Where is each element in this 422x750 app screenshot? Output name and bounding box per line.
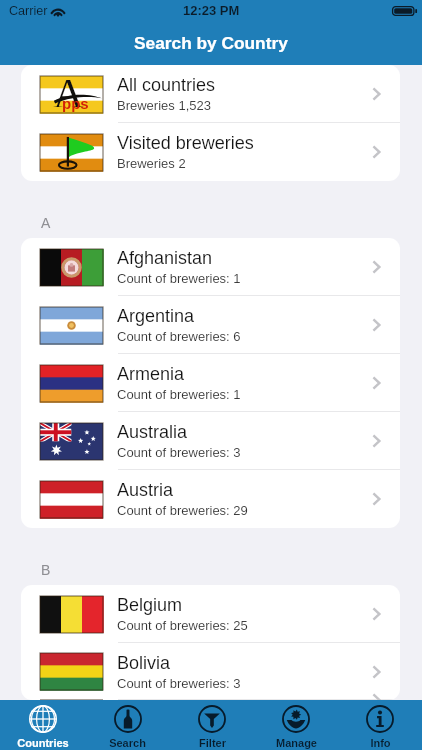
button[interactable]: Countries: [0, 700, 85, 750]
staticText: A: [41, 215, 51, 231]
staticText: Count of breweries: 25: [117, 618, 248, 633]
staticText: Armenia: [117, 364, 185, 384]
staticText: Argentina: [117, 306, 195, 326]
staticText: Carrier: [9, 4, 48, 18]
staticText: A: [53, 70, 85, 107]
staticText: B: [41, 562, 51, 578]
staticText: Filter: [199, 737, 226, 749]
staticText: 12:23 PM: [183, 3, 240, 18]
button[interactable]: Filter: [170, 700, 254, 750]
staticText: Austria: [117, 480, 174, 500]
button[interactable]: Armenia: [21, 354, 400, 412]
button[interactable]: Australia: [21, 412, 400, 470]
staticText: Countries: [17, 737, 69, 749]
staticText: Count of breweries: 3: [117, 445, 241, 460]
button[interactable]: Afghanistan: [21, 238, 400, 296]
button[interactable]: Visited breweries: [21, 123, 400, 181]
staticText: Count of breweries: 1: [117, 387, 241, 402]
staticText: Count of breweries: 1: [117, 271, 241, 286]
staticText: Count of breweries: 29: [117, 503, 248, 518]
staticText: Breweries 2: [117, 156, 186, 171]
staticText: Manage: [276, 737, 317, 749]
staticText: pps: [62, 95, 89, 112]
button[interactable]: A: [21, 65, 400, 123]
button[interactable]: Belgium: [21, 585, 400, 643]
staticText: Bolivia: [117, 653, 171, 673]
button[interactable]: Search: [85, 700, 170, 750]
staticText: Search by Country: [134, 33, 288, 52]
staticText: Count of breweries: 6: [117, 329, 241, 344]
staticText: Search: [109, 737, 146, 749]
button[interactable]: Argentina: [21, 296, 400, 354]
staticText: Breweries 1,523: [117, 98, 211, 113]
staticText: Count of breweries: 3: [117, 676, 241, 691]
staticText: All countries: [117, 75, 216, 95]
staticText: Belgium: [117, 595, 183, 615]
staticText: Afghanistan: [117, 248, 213, 268]
staticText: Visited breweries: [117, 133, 254, 153]
button[interactable]: Manage: [254, 700, 338, 750]
button[interactable]: Bolivia: [21, 643, 400, 700]
staticText: Australia: [117, 422, 188, 442]
button[interactable]: Austria: [21, 470, 400, 528]
staticText: Info: [370, 737, 391, 749]
button[interactable]: Info: [338, 700, 422, 750]
